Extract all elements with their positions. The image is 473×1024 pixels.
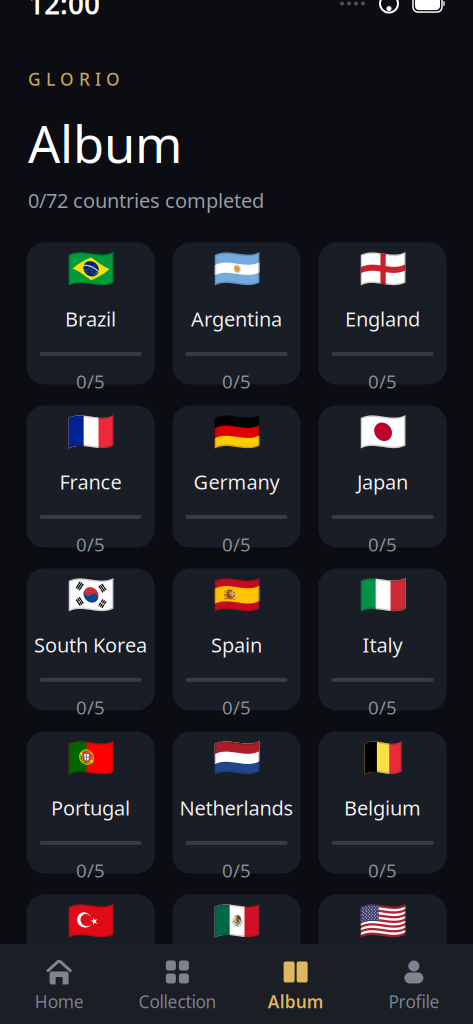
button[interactable]: Home — [0, 947, 118, 1021]
button[interactable]: 🇰🇷 — [26, 568, 154, 710]
button[interactable]: 🇧🇷 — [26, 242, 154, 384]
staticText: Argentina — [191, 305, 282, 332]
staticText: Profile — [388, 990, 439, 1013]
button[interactable]: 🇫🇷 — [26, 405, 154, 547]
staticText: 0/5 — [222, 532, 251, 557]
staticText: Japan — [357, 468, 408, 495]
button[interactable]: 🇪🇸 — [172, 568, 300, 710]
staticText: 0/5 — [76, 532, 105, 557]
staticText: G L O R I O — [28, 68, 120, 91]
staticText: 0/5 — [222, 369, 251, 394]
staticText: Italy — [362, 631, 402, 658]
staticText: 🇳🇱 — [212, 736, 260, 780]
staticText: South Korea — [34, 631, 147, 658]
staticText: 🇹🇷 — [66, 899, 114, 943]
button[interactable]: Collection — [118, 947, 236, 1021]
button[interactable]: 🇺🇸 — [318, 894, 446, 1024]
staticText: Brazil — [65, 305, 116, 332]
staticText: Germany — [193, 468, 279, 495]
staticText: 🇮🇹 — [358, 573, 406, 617]
staticText: 🇧🇪 — [358, 736, 406, 780]
staticText: 🇧🇷 — [66, 247, 114, 291]
staticText: Album — [268, 990, 324, 1013]
staticText: Netherlands — [179, 794, 293, 821]
button[interactable]: 🇩🇪 — [172, 405, 300, 547]
staticText: Turkey — [59, 957, 121, 984]
button[interactable]: 🇳🇱 — [172, 731, 300, 873]
staticText: Spain — [211, 631, 262, 658]
staticText: Collection — [138, 990, 216, 1013]
staticText: 0/5 — [368, 858, 397, 883]
staticText: France — [59, 468, 121, 495]
staticText: 0/5 — [76, 695, 105, 720]
button[interactable]: 🇹🇷 — [26, 894, 154, 1024]
staticText: 0/5 — [76, 858, 105, 883]
button[interactable]: 🇮🇹 — [318, 568, 446, 710]
staticText: 🇰🇷 — [66, 573, 114, 617]
staticText: Portugal — [51, 794, 130, 821]
staticText: 🇦🇷 — [212, 247, 260, 291]
staticText: 0/5 — [222, 858, 251, 883]
staticText: 0/5 — [368, 695, 397, 720]
staticText: 0/5 — [368, 369, 397, 394]
button[interactable]: 🇵🇹 — [26, 731, 154, 873]
staticText: 0/5 — [222, 695, 251, 720]
button[interactable]: 🇦🇷 — [172, 242, 300, 384]
button[interactable]: 🇯🇵 — [318, 405, 446, 547]
button[interactable]: 🏴󠁧󠁢󠁥󠁮󠁧󠁿 — [318, 242, 446, 384]
staticText: England — [345, 305, 420, 332]
staticText: 0/5 — [76, 369, 105, 394]
button[interactable]: Profile — [355, 947, 473, 1021]
button[interactable]: 🇲🇽 — [172, 894, 300, 1024]
staticText: 🇵🇹 — [66, 736, 114, 780]
staticText: 12:00 — [28, 0, 100, 22]
button[interactable]: Album — [236, 947, 355, 1021]
staticText: 🇲🇽 — [212, 899, 260, 943]
staticText: Belgium — [344, 794, 421, 821]
staticText: 🇺🇸 — [358, 899, 406, 943]
staticText: 🇩🇪 — [212, 410, 260, 454]
staticText: 🇪🇸 — [212, 573, 260, 617]
staticText: Home — [35, 990, 84, 1013]
staticText: 0/5 — [368, 532, 397, 557]
staticText: 0/72 countries completed — [28, 187, 264, 213]
staticText: 🇯🇵 — [358, 410, 406, 454]
staticText: 🇫🇷 — [66, 410, 114, 454]
staticText: 🏴󠁧󠁢󠁥󠁮󠁧󠁿 — [358, 247, 406, 291]
staticText: Album — [28, 110, 182, 177]
button[interactable]: 🇧🇪 — [318, 731, 446, 873]
